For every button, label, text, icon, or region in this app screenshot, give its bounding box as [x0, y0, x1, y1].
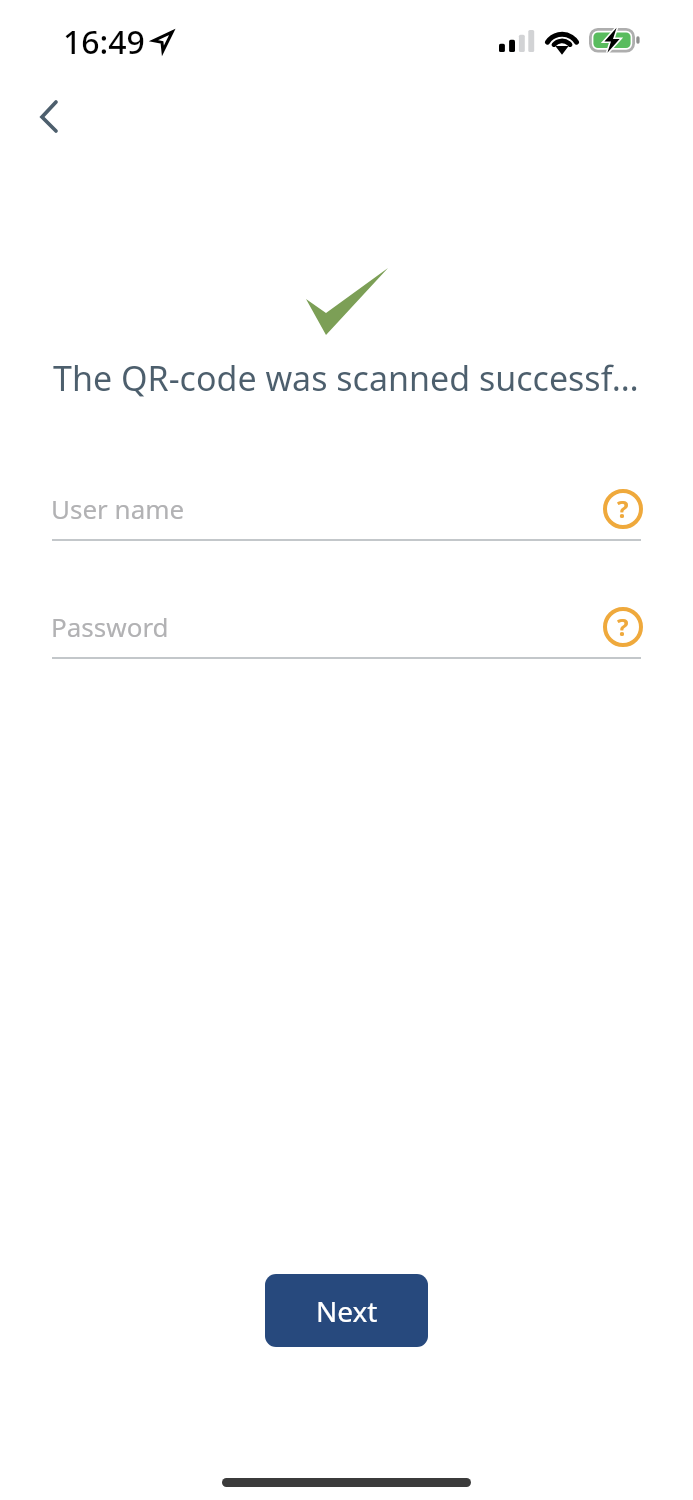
staticText: Password [51, 609, 169, 644]
staticText: ? [617, 610, 629, 643]
button[interactable]: Back [14, 89, 70, 145]
button[interactable]: User name [52, 482, 641, 541]
button[interactable]: Help for Password [603, 607, 643, 647]
button[interactable]: Help for User name [603, 489, 643, 529]
button[interactable]: Next [265, 1274, 428, 1347]
staticText: User name [51, 491, 185, 526]
staticText: The QR-code was scanned successf… [53, 355, 639, 401]
button[interactable]: Password [52, 600, 641, 659]
staticText: Next [316, 1292, 378, 1330]
staticText: ? [617, 492, 629, 525]
staticText: 16:49 [63, 20, 145, 64]
